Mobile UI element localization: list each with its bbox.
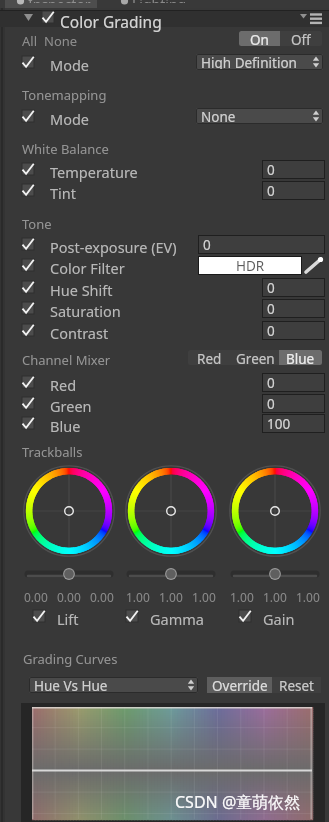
button[interactable]: All [22, 32, 38, 50]
staticText: Tint [50, 183, 76, 203]
button[interactable]: 0 [262, 160, 325, 179]
button[interactable] [22, 302, 34, 314]
button[interactable]: Preset menu [300, 12, 324, 26]
staticText: HDR [236, 257, 265, 275]
button[interactable]: 0 [262, 299, 325, 318]
staticText: Inspector [28, 0, 91, 3]
staticText: Gamma [150, 609, 204, 629]
button[interactable]: Off [280, 31, 322, 46]
button[interactable]: Reset [272, 677, 321, 693]
button[interactable]: None [44, 32, 78, 50]
button[interactable] [33, 610, 45, 622]
button[interactable] [22, 397, 34, 409]
button[interactable]: 0 [262, 321, 325, 340]
button[interactable] [0, 10, 329, 27]
button[interactable]: 0 [262, 373, 325, 392]
staticText: Hue Shift [50, 280, 113, 300]
button[interactable]: Red [188, 350, 231, 365]
button[interactable] [22, 56, 34, 68]
button[interactable]: 0 [262, 394, 325, 413]
button[interactable]: Blue [279, 350, 322, 365]
staticText: Red [197, 350, 222, 365]
staticText: 0 [267, 395, 275, 413]
staticText: Red [50, 375, 77, 395]
button[interactable]: Color picker [303, 256, 325, 275]
staticText: None [201, 108, 236, 124]
staticText: Mode [50, 55, 90, 75]
staticText: CSDN @童萌依然 [175, 791, 301, 813]
staticText: Lift [57, 609, 79, 629]
staticText: 0 [267, 300, 275, 318]
button[interactable]: High Definition Ran [196, 54, 323, 70]
button[interactable] [22, 324, 34, 336]
staticText: Temperature [50, 162, 138, 182]
staticText: Blue [286, 350, 315, 365]
button[interactable] [22, 376, 34, 388]
staticText: 1.00 [263, 589, 287, 605]
staticText: 0.00 [90, 589, 114, 605]
staticText: 0 [267, 322, 275, 340]
staticText: Post-exposure (EV) [50, 237, 177, 257]
staticText: 0 [267, 374, 275, 392]
button[interactable]: On [239, 31, 280, 46]
button[interactable]: 0 [198, 235, 325, 254]
staticText: Hue Vs Hue [34, 677, 108, 693]
staticText: Override [212, 677, 268, 693]
button[interactable]: 100 [262, 414, 325, 433]
staticText: 0.00 [24, 589, 48, 605]
button[interactable] [22, 417, 34, 429]
staticText: Trackballs [22, 443, 83, 461]
staticText: Grading Curves [23, 650, 118, 668]
staticText: Channel Mixer [22, 351, 111, 369]
button[interactable]: HDR [198, 256, 302, 275]
button[interactable] [22, 281, 34, 293]
staticText: Color Filter [50, 258, 125, 278]
staticText: Tone [22, 215, 52, 233]
staticText: Contrast [50, 323, 109, 343]
button[interactable] [42, 11, 54, 23]
staticText: Off [291, 31, 311, 46]
staticText: 0 [267, 182, 275, 200]
staticText: Color Grading [60, 11, 162, 32]
staticText: Green [50, 396, 92, 416]
staticText: Reset [279, 677, 314, 693]
button[interactable] [239, 610, 251, 622]
staticText: 1.00 [159, 589, 183, 605]
button[interactable]: Override [207, 677, 272, 693]
staticText: Mode [50, 109, 90, 129]
button[interactable] [22, 184, 34, 196]
staticText: Saturation [50, 301, 121, 321]
staticText: 0 [267, 161, 275, 179]
button[interactable]: None [196, 108, 323, 124]
staticText: 100 [267, 415, 291, 433]
staticText: Tonemapping [22, 86, 107, 104]
button[interactable] [126, 610, 138, 622]
staticText: 1.00 [296, 589, 320, 605]
button[interactable] [32, 707, 312, 819]
button[interactable] [22, 163, 34, 175]
staticText: On [250, 31, 269, 46]
button[interactable]: 0 [262, 278, 325, 297]
staticText: 0.00 [57, 589, 81, 605]
staticText: 1.00 [126, 589, 150, 605]
button[interactable]: Hue Vs Hue [29, 677, 198, 693]
staticText: Lighting [132, 0, 187, 3]
staticText: 0 [267, 279, 275, 297]
button[interactable] [5, 0, 97, 8]
button[interactable] [22, 259, 34, 271]
staticText: Green [236, 350, 275, 365]
staticText: 0 [203, 236, 211, 254]
staticText: 1.00 [192, 589, 216, 605]
staticText: 1.00 [230, 589, 254, 605]
button[interactable]: Green [231, 350, 279, 365]
button[interactable] [22, 238, 34, 250]
button[interactable]: 0 [262, 181, 325, 200]
staticText: Blue [50, 416, 81, 436]
staticText: Gain [263, 609, 295, 629]
staticText: White Balance [22, 140, 109, 158]
staticText: High Definition Ran [201, 54, 323, 70]
button[interactable] [22, 110, 34, 122]
